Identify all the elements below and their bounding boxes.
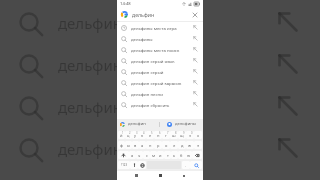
staticText: дельфина (58, 13, 131, 33)
staticText: 1 (122, 131, 124, 135)
button[interactable]: д (178, 141, 186, 149)
button[interactable]: Shift (118, 151, 129, 159)
button[interactable]: Recents (179, 171, 189, 180)
button[interactable]: Language (138, 161, 146, 169)
staticText: дельфин сбросить (131, 102, 192, 108)
staticText: э (197, 143, 199, 148)
staticText: 5 (151, 131, 153, 135)
button[interactable]: Insert suggestion (192, 68, 199, 75)
button[interactable]: . (182, 161, 190, 169)
staticText: д (181, 143, 184, 148)
button[interactable]: дельфины места поиск играть (117, 44, 203, 55)
staticText: дельфины (131, 36, 192, 42)
button[interactable]: дельфин (117, 8, 203, 21)
staticText: о (165, 143, 168, 148)
button[interactable]: дельфин песни (117, 88, 203, 99)
button[interactable]: е (146, 131, 154, 139)
button[interactable]: дельфины (117, 33, 203, 44)
button[interactable]: дельфины места игра (117, 22, 203, 33)
button[interactable]: Insert suggestion (192, 79, 199, 86)
button[interactable]: Search (190, 161, 202, 169)
button[interactable]: Insert suggestion (192, 57, 199, 64)
button[interactable]: о (162, 141, 170, 149)
button[interactable]: м (150, 151, 157, 159)
button[interactable]: в (132, 141, 139, 149)
button[interactable]: Emoji settings (130, 161, 138, 169)
staticText: дельфины места игра (131, 25, 192, 31)
staticText: и (159, 153, 162, 158)
staticText: дельфины места поиск играть (131, 47, 192, 53)
staticText: н (157, 133, 160, 138)
staticText: 4 (143, 131, 145, 135)
button[interactable]: дельфин серый язык (117, 55, 203, 66)
staticText: 8 (175, 131, 177, 135)
staticText: 6 (159, 131, 161, 135)
button[interactable]: г (162, 131, 170, 139)
staticText: ж (188, 143, 192, 148)
staticText: л (173, 143, 176, 148)
staticText: щ (180, 133, 184, 138)
button[interactable]: ц (125, 131, 132, 139)
button[interactable]: Clear search (191, 11, 199, 19)
staticText: 0 (191, 131, 193, 135)
staticText: я (131, 153, 134, 158)
button[interactable]: а (139, 141, 146, 149)
button[interactable]: ж (186, 141, 194, 149)
button[interactable]: й (118, 131, 125, 139)
staticText: м (152, 153, 156, 158)
button[interactable]: ь (171, 151, 178, 159)
staticText: х (197, 133, 200, 138)
button[interactable]: р (154, 141, 162, 149)
button[interactable]: дельфины (160, 119, 203, 129)
staticText: с (146, 153, 148, 158)
staticText: дельфина (58, 55, 131, 75)
button[interactable]: дельфин серый (117, 66, 203, 77)
staticText: дельфины (175, 121, 197, 127)
button[interactable]: Insert suggestion (192, 101, 199, 108)
button[interactable]: з (186, 131, 194, 139)
button[interactable]: Insert suggestion (192, 46, 199, 53)
button[interactable]: б (178, 151, 185, 159)
button[interactable]: ю (185, 151, 192, 159)
staticText: 9 (183, 131, 185, 135)
button[interactable]: л (170, 141, 178, 149)
button[interactable]: дельфин (117, 119, 159, 129)
staticText: 3 (136, 131, 138, 135)
staticText: а (141, 143, 144, 148)
button[interactable]: э (194, 141, 202, 149)
button[interactable]: к (139, 131, 146, 139)
button[interactable]: п (146, 141, 154, 149)
staticText: г (165, 133, 167, 138)
button[interactable]: дельфин сбросить (117, 99, 203, 110)
staticText: у (134, 133, 137, 138)
button[interactable]: щ (178, 131, 186, 139)
button[interactable]: н (154, 131, 162, 139)
button[interactable]: т (164, 151, 171, 159)
button[interactable]: я (129, 151, 136, 159)
staticText: . (185, 163, 187, 168)
button[interactable]: Backspace (192, 151, 202, 159)
button[interactable]: у (132, 131, 139, 139)
button[interactable]: Insert suggestion (192, 24, 199, 31)
staticText: ч (138, 153, 141, 158)
staticText: р (157, 143, 160, 148)
staticText: дельфин серый (131, 69, 192, 75)
button[interactable]: Back (131, 171, 141, 180)
button[interactable]: дельфин серый карасик (117, 77, 203, 88)
button[interactable]: х (194, 131, 202, 139)
staticText: дельфин серый язык (131, 58, 192, 64)
button[interactable]: Home (155, 171, 165, 180)
button[interactable]: с (143, 151, 150, 159)
staticText: ю (187, 153, 191, 158)
button[interactable]: Insert suggestion (192, 90, 199, 97)
button[interactable]: ч (136, 151, 143, 159)
button[interactable]: Insert suggestion (192, 35, 199, 42)
staticText: ц (127, 133, 130, 138)
button[interactable]: ?123 (118, 161, 130, 169)
button[interactable]: ш (170, 131, 178, 139)
staticText: дельфин (128, 121, 146, 127)
button[interactable]: ы (125, 141, 132, 149)
button[interactable]: ф (118, 141, 125, 149)
button[interactable]: и (157, 151, 164, 159)
